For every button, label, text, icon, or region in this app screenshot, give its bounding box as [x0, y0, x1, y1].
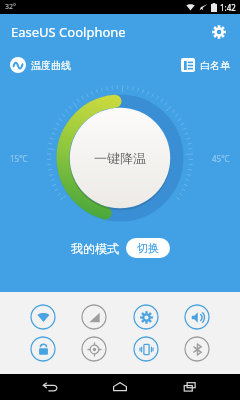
button[interactable]: Vibrate	[133, 336, 159, 362]
staticText: 15°C	[10, 153, 28, 164]
button[interactable]: Wi-Fi	[30, 304, 56, 330]
staticText: EaseUS Coolphone	[11, 23, 126, 41]
staticText: 我的模式	[71, 241, 119, 256]
staticText: 温度曲线	[31, 59, 71, 72]
button[interactable]: Bluetooth	[184, 336, 210, 362]
button[interactable]: 温度曲线	[10, 57, 71, 73]
button[interactable]: Home	[100, 374, 140, 400]
button[interactable]: 切换	[126, 238, 170, 258]
staticText: 1:42	[220, 2, 236, 13]
button[interactable]: Settings	[133, 304, 159, 330]
button[interactable]: 一键降温	[88, 146, 152, 170]
staticText: 切换	[137, 241, 159, 255]
button[interactable]: Settings	[206, 19, 232, 45]
button[interactable]: Recent apps	[170, 374, 210, 400]
button[interactable]: Volume	[184, 304, 210, 330]
button[interactable]: 白名单	[181, 58, 230, 72]
button[interactable]: Back	[30, 374, 70, 400]
button[interactable]: Mobile data	[81, 304, 107, 330]
button[interactable]: Screen lock	[30, 336, 56, 362]
staticText: 白名单	[200, 59, 230, 72]
button[interactable]: Location	[81, 336, 107, 362]
staticText: 32°	[5, 2, 17, 12]
staticText: 45°C	[212, 153, 230, 164]
